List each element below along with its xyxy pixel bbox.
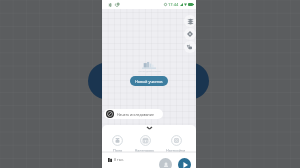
- button[interactable]: Locate: [184, 28, 196, 40]
- button[interactable]: Новый участок: [130, 76, 168, 86]
- staticText: Настройки: [166, 148, 186, 153]
- staticText: Календарь: [135, 148, 155, 153]
- staticText: Нет ни одного участка: [138, 70, 161, 73]
- staticText: 8 тыс.: [114, 157, 125, 162]
- button[interactable]: Календарь: [134, 135, 156, 153]
- button[interactable]: Layers: [184, 15, 196, 27]
- button[interactable]: Начать исследование: [104, 109, 163, 119]
- staticText: Начать исследование: [117, 112, 154, 117]
- button[interactable]: Profile: [159, 158, 172, 168]
- staticText: 17:44: [168, 2, 179, 7]
- button[interactable]: Pan: [184, 41, 196, 53]
- button[interactable]: Настройки: [165, 135, 187, 153]
- button[interactable]: Поля: [111, 135, 124, 153]
- button[interactable]: Play: [178, 158, 191, 168]
- staticText: Новый участок: [135, 79, 163, 84]
- staticText: Поля: [113, 148, 123, 153]
